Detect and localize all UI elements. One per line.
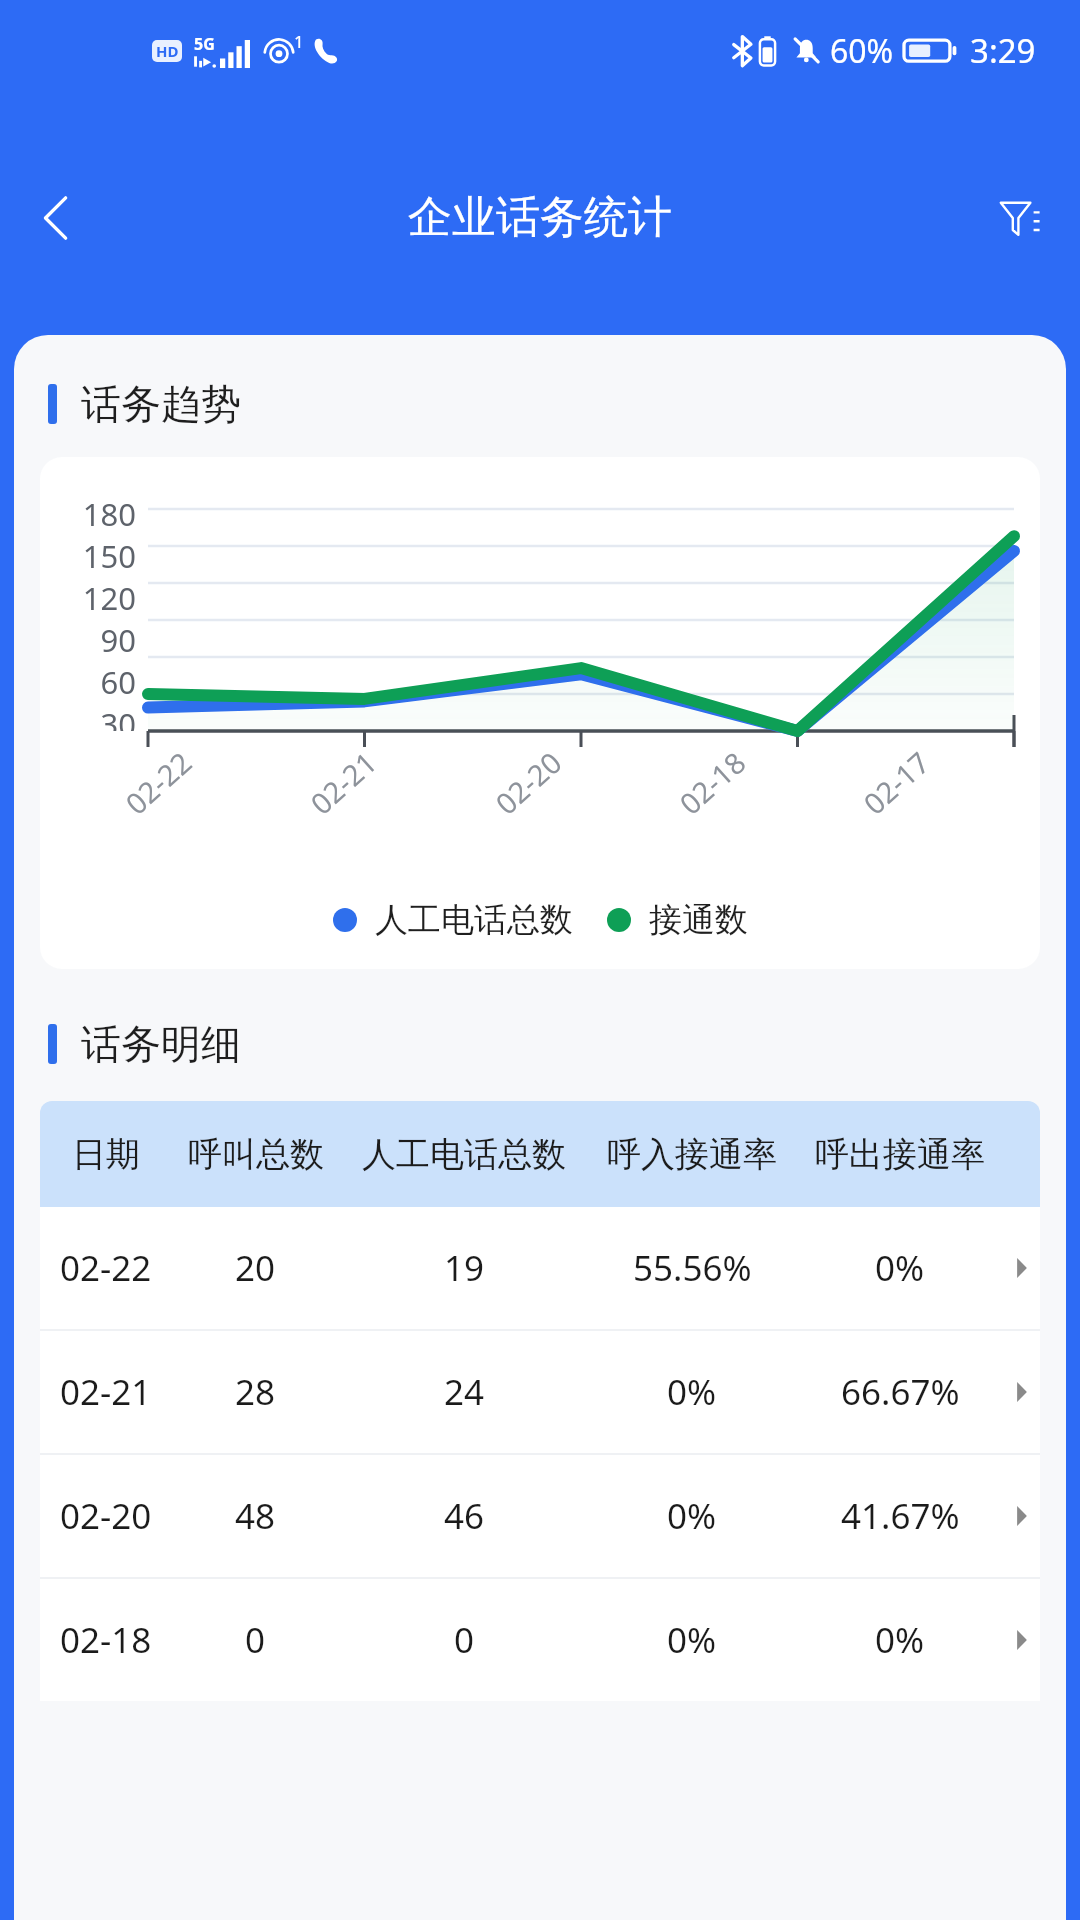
staticText: 0% (667, 1368, 717, 1416)
staticText: 话务趋势 (81, 379, 241, 429)
staticText: 5G (194, 33, 215, 55)
staticText: 120 (82, 577, 136, 619)
staticText: 0 (245, 1616, 266, 1664)
staticText: 接通数 (649, 899, 748, 941)
button[interactable]: 02-22 (40, 1207, 1040, 1329)
staticText: 20 (235, 1244, 276, 1292)
staticText: 02-21 (60, 1368, 152, 1416)
button[interactable]: 02-18 (40, 1579, 1040, 1701)
staticText: 02-20 (487, 743, 569, 822)
staticText: 0% (667, 1616, 717, 1664)
staticText: 48 (235, 1492, 276, 1540)
staticText: 3:29 (970, 28, 1036, 73)
staticText: 02-18 (671, 743, 753, 822)
staticText: 呼叫总数 (188, 1133, 324, 1176)
staticText: HD (156, 41, 179, 61)
staticText: 人工电话总数 (375, 899, 573, 941)
button[interactable]: 02-20 (40, 1455, 1040, 1577)
button[interactable]: Back (14, 175, 100, 261)
button[interactable]: Filter (980, 178, 1060, 258)
staticText: 55.56% (633, 1244, 752, 1292)
staticText: 人工电话总数 (362, 1133, 566, 1176)
staticText: 90 (100, 619, 136, 661)
staticText: 02-18 (60, 1616, 152, 1664)
staticText: 呼出接通率 (815, 1133, 985, 1176)
staticText: 30 (100, 703, 136, 731)
staticText: 28 (235, 1368, 276, 1416)
button[interactable]: 02-21 (40, 1331, 1040, 1453)
staticText: 02-22 (60, 1244, 152, 1292)
staticText: 02-17 (855, 743, 937, 822)
staticText: 0% (875, 1244, 925, 1292)
staticText: 话务明细 (81, 1019, 241, 1069)
staticText: 46 (444, 1492, 485, 1540)
staticText: 0 (454, 1616, 475, 1664)
staticText: 02-21 (302, 743, 384, 822)
staticText: 19 (444, 1244, 485, 1292)
staticText: 日期 (72, 1133, 140, 1176)
staticText: 41.67% (841, 1492, 960, 1540)
staticText: 150 (82, 535, 136, 577)
staticText: 66.67% (841, 1368, 960, 1416)
staticText: 02-22 (117, 743, 199, 822)
staticText: 02-20 (60, 1492, 152, 1540)
staticText: 企业话务统计 (408, 190, 672, 245)
staticText: 24 (444, 1368, 485, 1416)
staticText: 1 (294, 30, 304, 53)
staticText: 0% (667, 1492, 717, 1540)
staticText: 呼入接通率 (607, 1133, 777, 1176)
staticText: 60 (100, 661, 136, 703)
staticText: 180 (82, 493, 136, 535)
staticText: 0% (875, 1616, 925, 1664)
staticText: 60% (830, 29, 894, 73)
